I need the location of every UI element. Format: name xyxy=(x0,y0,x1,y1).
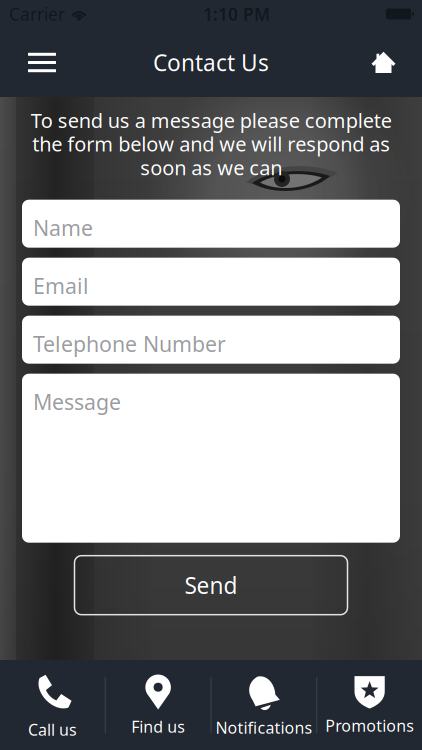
staticText: Send xyxy=(184,570,237,600)
staticText: 1:10 PM xyxy=(203,2,270,25)
button[interactable]: Call us xyxy=(0,660,105,750)
staticText: Promotions xyxy=(325,715,414,736)
staticText: Notifications xyxy=(215,717,312,738)
staticText: Telephone Number xyxy=(33,330,226,358)
button[interactable]: Find us xyxy=(106,660,211,750)
staticText: Contact Us xyxy=(153,47,269,77)
staticText: To send us a message please complete the… xyxy=(30,107,391,181)
button[interactable]: Notifications xyxy=(211,660,316,750)
button[interactable]: Send xyxy=(74,556,347,615)
staticText: Name xyxy=(33,214,93,242)
button[interactable]: Home xyxy=(355,30,422,95)
staticText: Message xyxy=(33,388,121,416)
staticText: Carrier xyxy=(9,2,65,25)
button[interactable]: Menu xyxy=(0,32,72,93)
staticText: Find us xyxy=(131,716,185,737)
staticText: Email xyxy=(33,272,89,300)
staticText: Call us xyxy=(28,719,77,740)
button[interactable]: Promotions xyxy=(317,660,422,750)
